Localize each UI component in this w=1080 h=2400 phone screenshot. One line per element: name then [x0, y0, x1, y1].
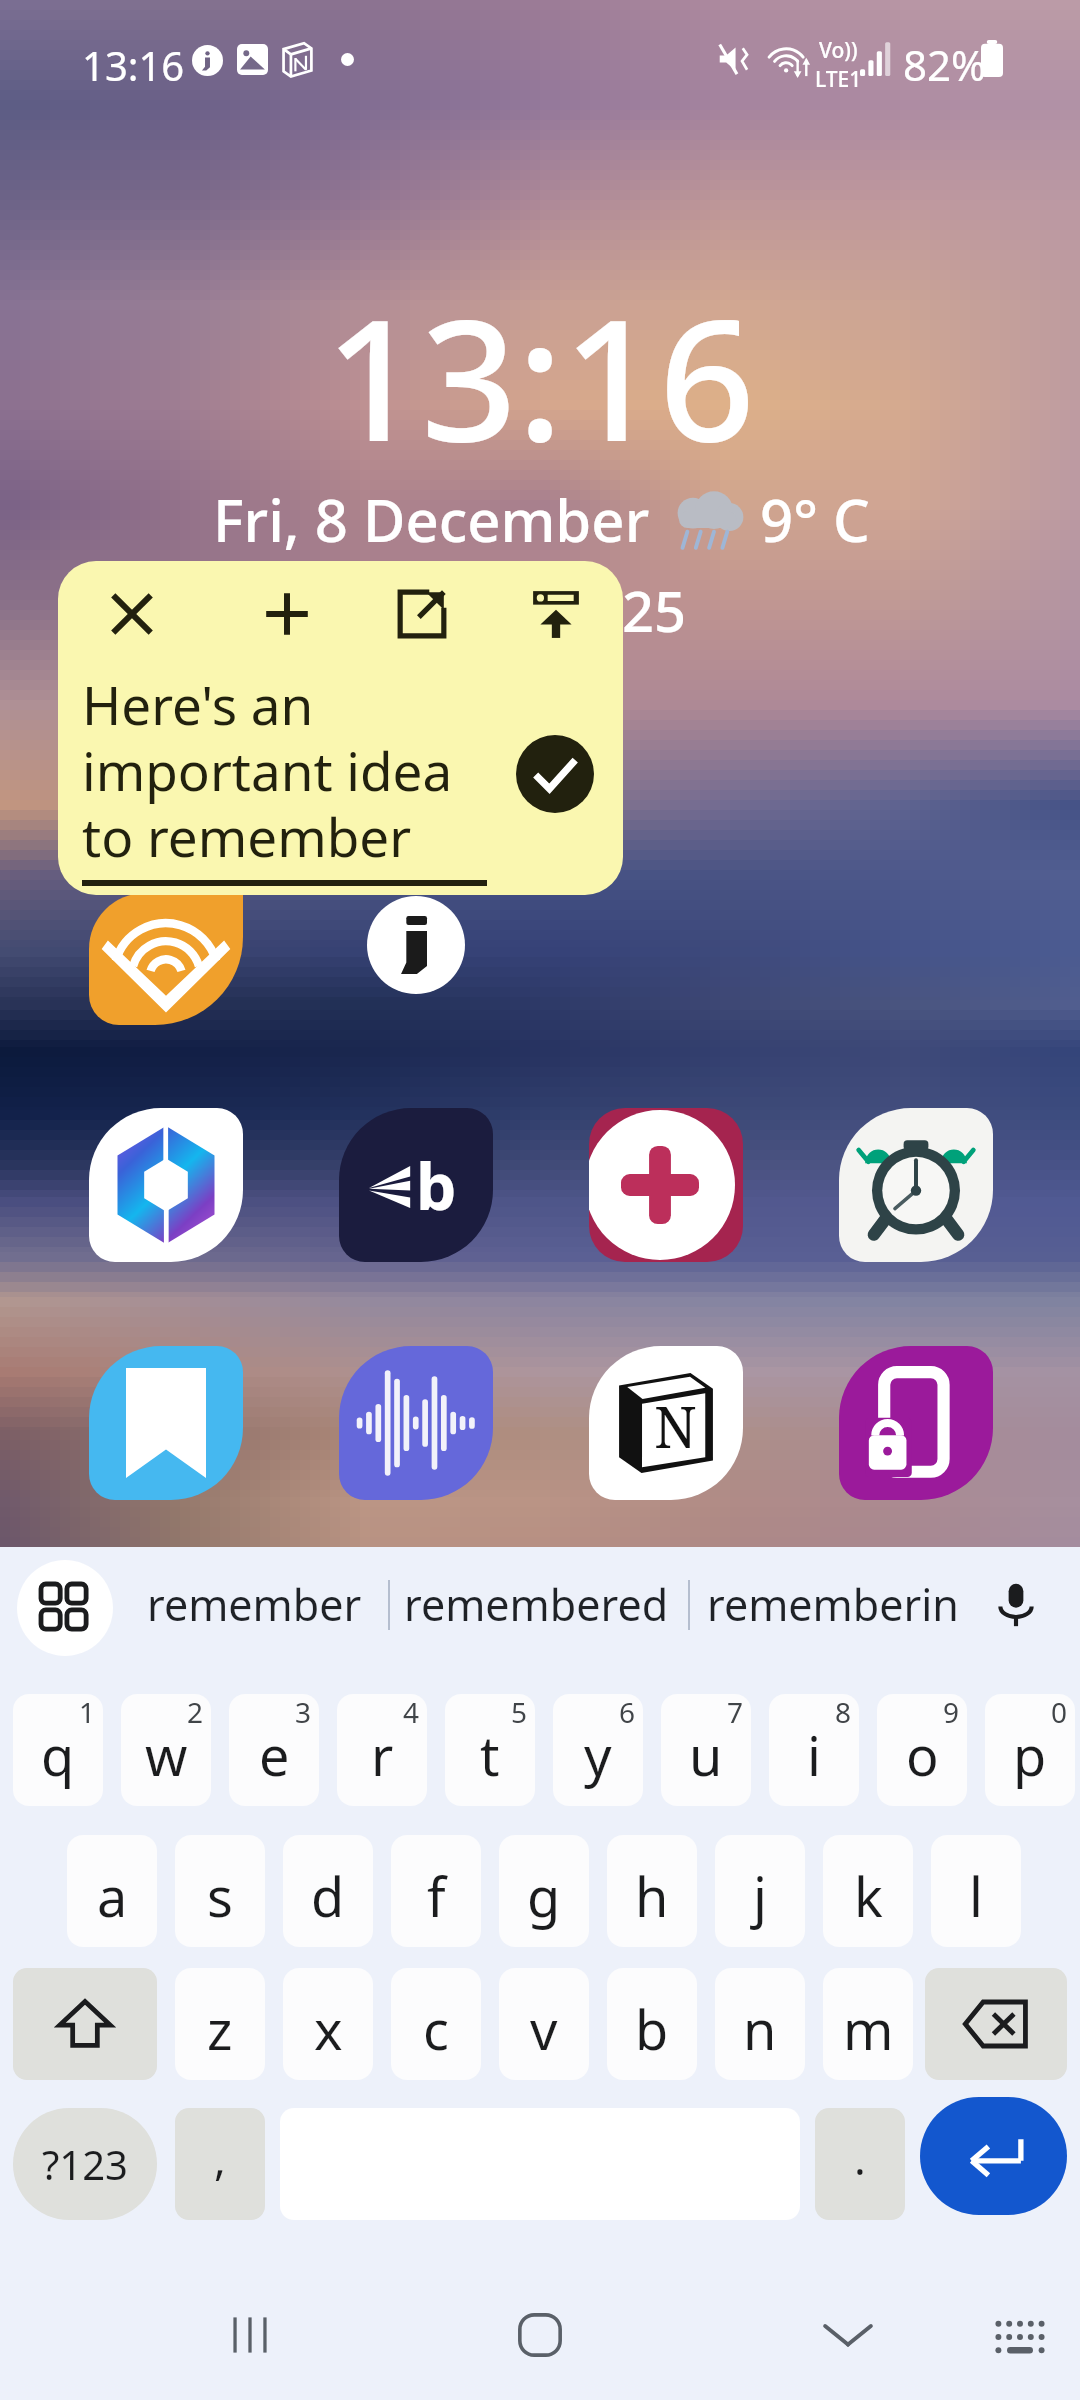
- staticText: 5: [511, 1694, 528, 1731]
- button[interactable]: m: [823, 1968, 913, 2080]
- button[interactable]: N: [589, 1346, 743, 1500]
- staticText: remember: [147, 1575, 362, 1634]
- button[interactable]: c: [391, 1968, 481, 2080]
- staticText: 82%: [903, 36, 986, 93]
- button[interactable]: s: [175, 1835, 265, 1947]
- staticText: w: [145, 1718, 188, 1792]
- button[interactable]: p: [985, 1694, 1075, 1806]
- staticText: 1: [79, 1694, 96, 1731]
- button[interactable]: x: [283, 1968, 373, 2080]
- staticText: ?123: [42, 2137, 128, 2191]
- button[interactable]: y: [553, 1694, 643, 1806]
- staticText: 9: [943, 1694, 960, 1731]
- staticText: u: [689, 1718, 723, 1792]
- button[interactable]: h: [607, 1835, 697, 1947]
- button[interactable]: [89, 1108, 243, 1262]
- staticText: b: [635, 1992, 669, 2066]
- button[interactable]: Add note: [250, 577, 324, 651]
- button[interactable]: g: [499, 1835, 589, 1947]
- button[interactable]: [839, 1346, 993, 1500]
- button[interactable]: u: [661, 1694, 751, 1806]
- staticText: f: [427, 1859, 446, 1933]
- button[interactable]: f: [391, 1835, 481, 1947]
- button[interactable]: j: [715, 1835, 805, 1947]
- staticText: 0: [1051, 1694, 1068, 1731]
- button[interactable]: r: [337, 1694, 427, 1806]
- button[interactable]: q: [13, 1694, 103, 1806]
- button[interactable]: Open in new: [385, 577, 459, 651]
- staticText: t: [480, 1718, 500, 1792]
- button[interactable]: Recents: [195, 2295, 305, 2375]
- staticText: g: [527, 1859, 561, 1933]
- button[interactable]: v: [499, 1968, 589, 2080]
- staticText: 13:16: [82, 38, 185, 92]
- staticText: Here's an important idea to remember: [82, 668, 453, 872]
- staticText: 6: [619, 1694, 636, 1731]
- staticText: d: [311, 1859, 345, 1933]
- button[interactable]: remembered: [404, 1547, 667, 1662]
- button[interactable]: [89, 893, 243, 1025]
- button[interactable]: l: [931, 1835, 1021, 1947]
- staticText: Fri, 8 December: [213, 480, 650, 559]
- staticText: o: [906, 1718, 939, 1792]
- button[interactable]: i: [769, 1694, 859, 1806]
- button[interactable]: Voice input: [980, 1569, 1052, 1641]
- button[interactable]: Home: [485, 2295, 595, 2375]
- staticText: j: [753, 1859, 767, 1933]
- staticText: c: [423, 1992, 449, 2066]
- staticText: r: [371, 1718, 394, 1792]
- staticText: v: [530, 1992, 558, 2066]
- staticText: 2: [187, 1694, 204, 1731]
- staticText: h: [635, 1859, 669, 1933]
- button[interactable]: b: [607, 1968, 697, 2080]
- staticText: 9° C: [760, 480, 870, 559]
- staticText: m: [843, 1992, 894, 2066]
- staticText: a: [97, 1859, 128, 1933]
- staticText: 3: [295, 1694, 312, 1731]
- staticText: LTE1: [815, 65, 862, 94]
- button[interactable]: Enter: [920, 2097, 1067, 2215]
- button[interactable]: o: [877, 1694, 967, 1806]
- button[interactable]: Close: [95, 577, 169, 651]
- button[interactable]: Backspace: [925, 1968, 1067, 2080]
- button[interactable]: remembering: [707, 1547, 957, 1662]
- button[interactable]: ,: [175, 2108, 265, 2220]
- button[interactable]: z: [175, 1968, 265, 2080]
- button[interactable]: [89, 1346, 243, 1500]
- staticText: remembering: [707, 1575, 957, 1634]
- button[interactable]: k: [823, 1835, 913, 1947]
- button[interactable]: Shift: [13, 1968, 157, 2080]
- staticText: 7: [727, 1694, 744, 1731]
- button[interactable]: Pin to status bar: [519, 577, 593, 651]
- button[interactable]: b: [339, 1108, 493, 1262]
- staticText: b: [416, 1142, 457, 1229]
- button[interactable]: [589, 1108, 743, 1262]
- staticText: 4: [403, 1694, 420, 1731]
- button[interactable]: Hide keyboard: [793, 2295, 903, 2375]
- button[interactable]: Change keyboard: [965, 2295, 1075, 2375]
- button[interactable]: Mark done: [516, 735, 594, 813]
- staticText: 25: [622, 572, 687, 648]
- button[interactable]: ?123: [13, 2108, 157, 2220]
- button[interactable]: w: [121, 1694, 211, 1806]
- button[interactable]: t: [445, 1694, 535, 1806]
- staticText: 8: [835, 1694, 852, 1731]
- staticText: ,: [214, 2128, 226, 2188]
- button[interactable]: [339, 1346, 493, 1500]
- button[interactable]: n: [715, 1968, 805, 2080]
- button[interactable]: a: [67, 1835, 157, 1947]
- staticText: remembered: [404, 1575, 667, 1634]
- staticText: n: [743, 1992, 777, 2066]
- staticText: y: [584, 1718, 612, 1792]
- button[interactable]: [839, 1108, 993, 1262]
- staticText: z: [207, 1992, 233, 2066]
- button[interactable]: d: [283, 1835, 373, 1947]
- button[interactable]: remember: [142, 1547, 367, 1662]
- button[interactable]: .: [815, 2108, 905, 2220]
- button[interactable]: [367, 896, 465, 994]
- button[interactable]: Keyboard modes: [17, 1560, 113, 1656]
- staticText: l: [969, 1859, 983, 1933]
- staticText: .: [854, 2128, 866, 2188]
- button[interactable]: e: [229, 1694, 319, 1806]
